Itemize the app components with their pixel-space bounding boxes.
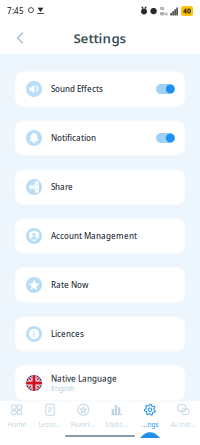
button[interactable]: Share <box>15 169 185 204</box>
staticText: 50 KB/s <box>160 6 168 16</box>
button[interactable]: Home <box>0 398 33 445</box>
staticText: Home <box>7 420 26 429</box>
staticText: Notification <box>51 133 96 143</box>
staticText: Licences <box>51 329 84 339</box>
button[interactable]: Lesso... <box>33 398 67 445</box>
button[interactable]: Statis... <box>100 398 133 445</box>
button[interactable]: Favori... <box>67 398 100 445</box>
staticText: ...ngs <box>141 420 158 429</box>
staticText: Lesso... <box>38 420 61 429</box>
staticText: Native Language <box>51 373 117 384</box>
button[interactable]: ...ngs <box>133 398 167 445</box>
button[interactable]: Notification <box>15 120 185 155</box>
staticText: Share <box>51 182 73 192</box>
staticText: Favori... <box>71 420 96 429</box>
staticText: Rate Now <box>51 280 88 290</box>
button[interactable]: Native Language <box>15 365 185 400</box>
staticText: Settings <box>73 29 126 47</box>
button[interactable]: AI inst... <box>167 398 200 445</box>
staticText: Statis... <box>105 420 128 429</box>
staticText: English <box>51 384 74 393</box>
staticText: Sound Effects <box>51 84 103 94</box>
staticText: AI inst... <box>171 420 196 429</box>
button[interactable]: Sound Effects <box>15 71 185 106</box>
button[interactable]: Account Management <box>15 218 185 253</box>
button[interactable]: Licences <box>15 316 185 351</box>
staticText: 7:45 <box>7 6 24 16</box>
button[interactable]: Rate Now <box>15 267 185 302</box>
button[interactable]: Back <box>7 25 34 50</box>
staticText: Account Management <box>51 231 137 241</box>
staticText: 40 <box>183 7 191 15</box>
